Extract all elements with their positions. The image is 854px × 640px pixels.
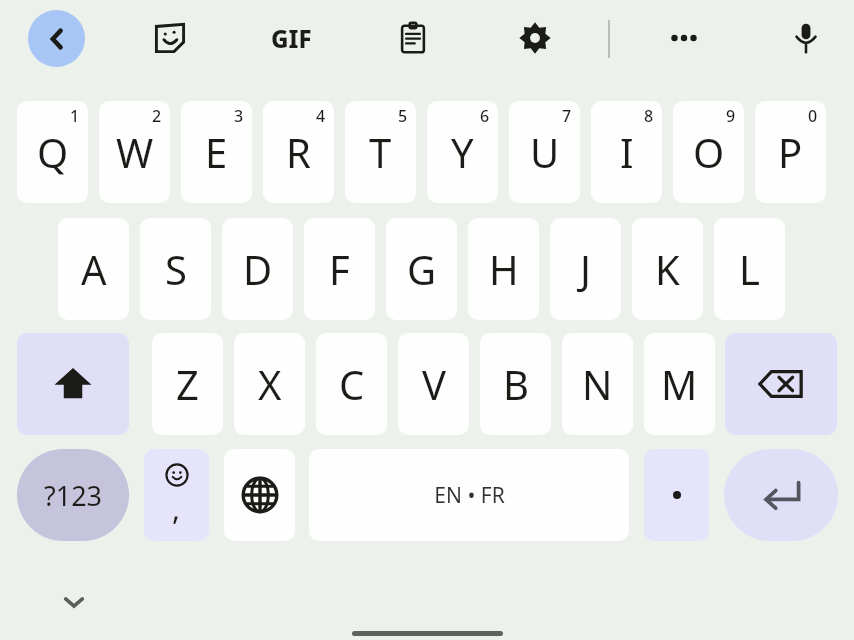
button[interactable] — [658, 12, 710, 64]
button[interactable]: ?123 — [17, 449, 129, 541]
other: Shift — [17, 333, 129, 435]
button[interactable] — [725, 333, 837, 435]
staticText: U — [530, 125, 560, 179]
other: More options — [658, 12, 710, 64]
button[interactable] — [52, 580, 96, 624]
button[interactable]: N — [562, 333, 633, 435]
staticText: A — [81, 242, 107, 296]
staticText: N — [582, 357, 613, 411]
staticText: 3 — [234, 105, 244, 127]
button[interactable] — [224, 449, 295, 541]
other: Period — [644, 449, 709, 541]
button[interactable]: S — [140, 218, 211, 320]
other: Switch language — [224, 449, 295, 541]
staticText: G — [407, 242, 437, 296]
button[interactable]: D — [222, 218, 293, 320]
staticText: K — [655, 242, 680, 296]
staticText: E — [205, 125, 228, 179]
button[interactable]: K — [632, 218, 703, 320]
staticText: Z — [176, 357, 199, 411]
staticText: F — [329, 242, 350, 296]
button[interactable]: P — [755, 101, 826, 203]
button[interactable]: L — [714, 218, 785, 320]
staticText: 7 — [562, 105, 572, 127]
other: Backspace — [725, 333, 837, 435]
button[interactable] — [509, 12, 561, 64]
button[interactable]: U — [509, 101, 580, 203]
button[interactable] — [644, 449, 709, 541]
button[interactable]: EN • FR — [309, 449, 629, 541]
button[interactable]: R — [263, 101, 334, 203]
staticText: B — [503, 357, 529, 411]
staticText: C — [339, 357, 365, 411]
staticText: Y — [451, 125, 474, 179]
staticText: Q — [37, 125, 69, 179]
staticText: J — [580, 242, 591, 296]
button[interactable]: F — [304, 218, 375, 320]
other: Enter — [724, 449, 838, 541]
staticText: 2 — [152, 105, 162, 127]
button[interactable]: Z — [152, 333, 223, 435]
staticText: GIF — [271, 22, 312, 55]
button[interactable] — [144, 12, 196, 64]
button[interactable]: G — [386, 218, 457, 320]
button[interactable] — [28, 10, 85, 67]
staticText: M — [661, 357, 698, 411]
other: Hide keyboard — [52, 580, 96, 624]
other: GIF — [262, 12, 320, 64]
button[interactable]: J — [550, 218, 621, 320]
button[interactable]: T — [345, 101, 416, 203]
button[interactable]: H — [468, 218, 539, 320]
button[interactable]: E — [181, 101, 252, 203]
staticText: 9 — [726, 105, 736, 127]
staticText: H — [489, 242, 519, 296]
other: Comma, emoji — [144, 449, 209, 541]
staticText: D — [243, 242, 273, 296]
button[interactable]: Y — [427, 101, 498, 203]
staticText: W — [116, 125, 154, 179]
button[interactable]: I — [591, 101, 662, 203]
staticText: P — [778, 125, 803, 179]
button[interactable] — [387, 12, 439, 64]
staticText: X — [258, 357, 282, 411]
staticText: O — [693, 125, 725, 179]
button[interactable] — [17, 333, 129, 435]
button[interactable]: W — [99, 101, 170, 203]
other: Back — [28, 10, 85, 67]
other: Clipboard — [387, 12, 439, 64]
button[interactable]: A — [58, 218, 129, 320]
other: Settings — [509, 12, 561, 64]
button[interactable]: , — [144, 449, 209, 541]
other: Stickers — [144, 12, 196, 64]
staticText: EN • FR — [434, 481, 505, 510]
staticText: 5 — [398, 105, 408, 127]
staticText: I — [620, 125, 634, 179]
staticText: L — [739, 242, 760, 296]
staticText: R — [286, 125, 311, 179]
button[interactable]: B — [480, 333, 551, 435]
staticText: 4 — [316, 105, 326, 127]
staticText: V — [422, 357, 446, 411]
button[interactable]: Q — [17, 101, 88, 203]
staticText: ?123 — [44, 477, 103, 514]
button[interactable]: C — [316, 333, 387, 435]
button[interactable]: V — [398, 333, 469, 435]
staticText: 6 — [480, 105, 490, 127]
staticText: 0 — [808, 105, 818, 127]
button[interactable] — [780, 12, 832, 64]
staticText: S — [165, 242, 187, 296]
other: Voice input — [780, 12, 832, 64]
button[interactable]: M — [644, 333, 715, 435]
other: Symbols — [17, 449, 129, 541]
button[interactable]: O — [673, 101, 744, 203]
button[interactable] — [724, 449, 838, 541]
staticText: 8 — [644, 105, 654, 127]
button[interactable]: X — [234, 333, 305, 435]
button[interactable]: GIF — [262, 12, 320, 64]
staticText: 1 — [70, 105, 80, 127]
staticText: , — [172, 488, 181, 529]
staticText: T — [369, 125, 392, 179]
